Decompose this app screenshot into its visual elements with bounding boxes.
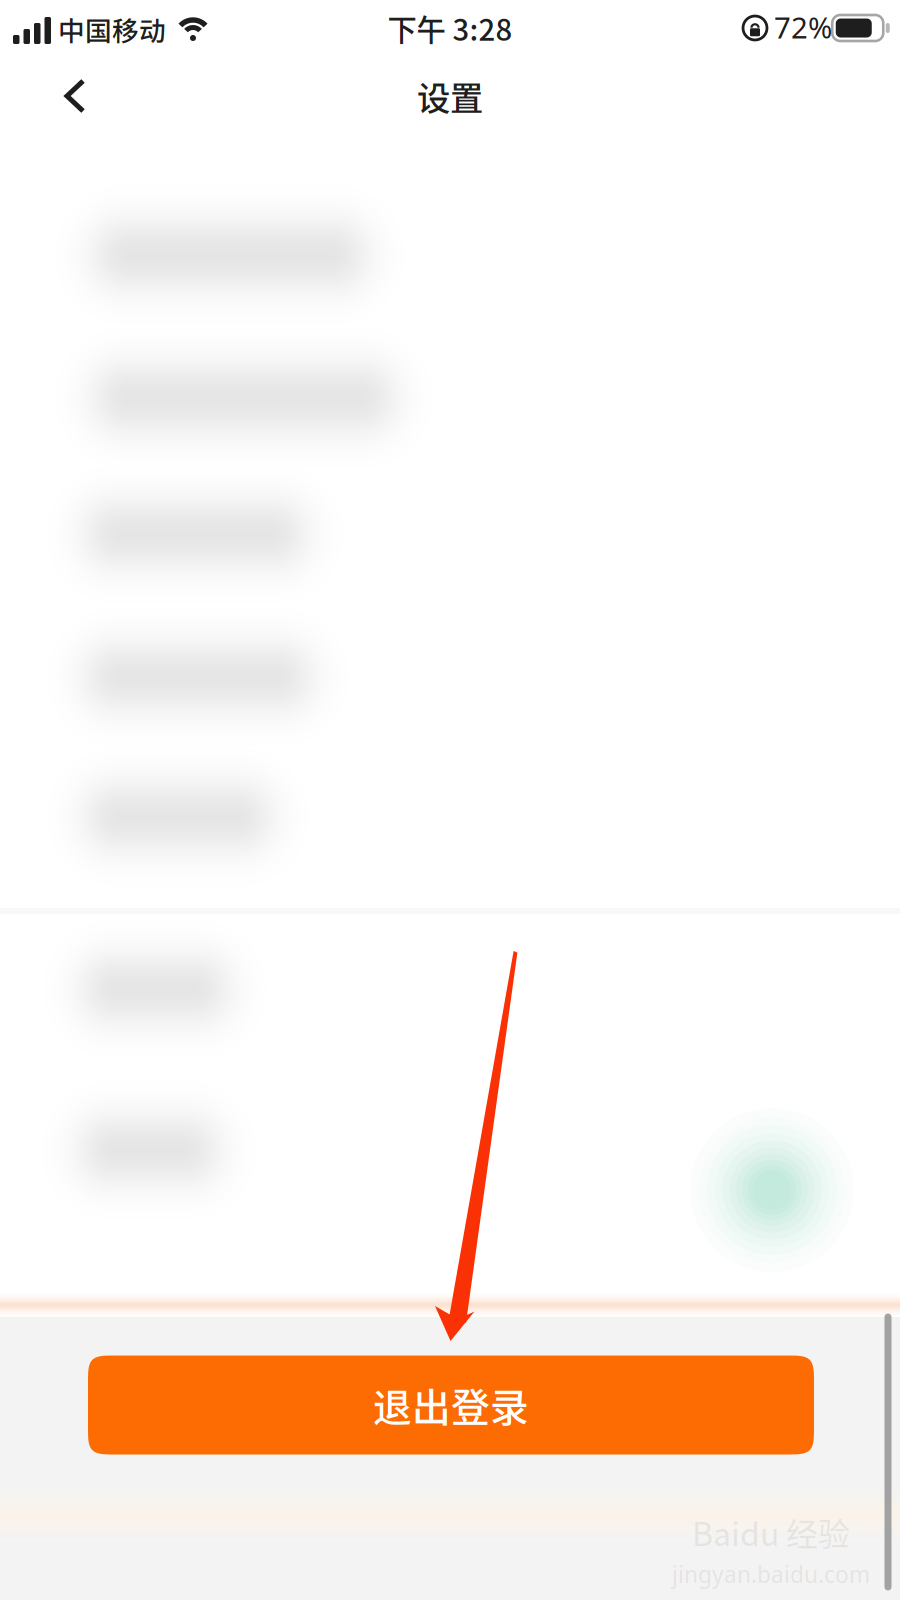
button[interactable]: Back xyxy=(38,59,112,133)
staticText: jingyan.baidu.com xyxy=(672,1559,870,1589)
button[interactable]: 退出登录 xyxy=(88,1355,814,1454)
staticText: 72% xyxy=(774,7,832,46)
staticText: 设置 xyxy=(417,72,483,120)
staticText: 中国移动 xyxy=(58,10,166,48)
staticText: 下午 3:28 xyxy=(387,7,512,49)
staticText: Baidu 经验 xyxy=(692,1509,850,1555)
staticText: 退出登录 xyxy=(373,1377,529,1433)
